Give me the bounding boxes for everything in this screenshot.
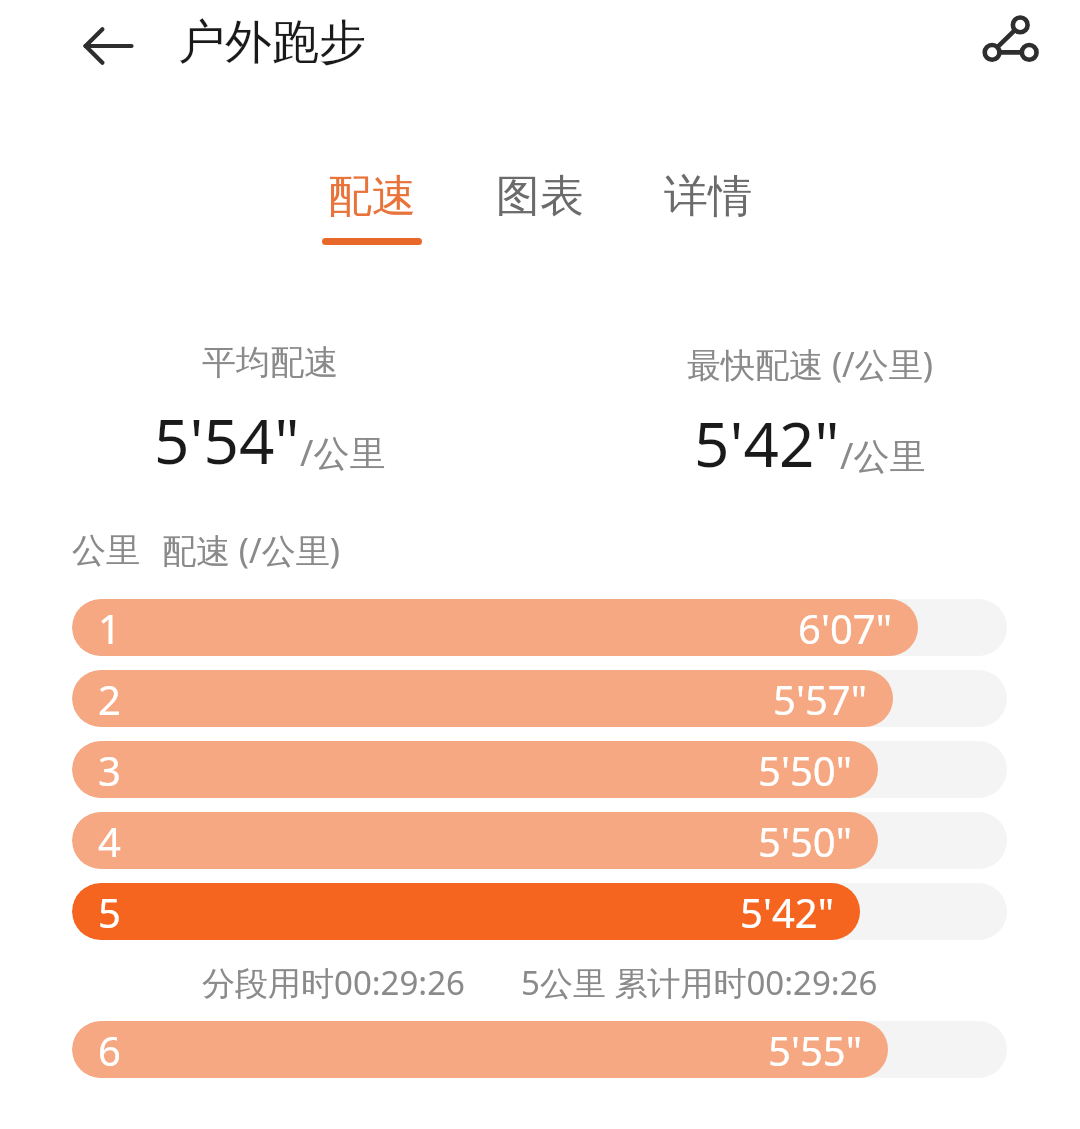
staticText: 1 <box>98 601 121 655</box>
button[interactable]: 5 <box>72 883 1007 940</box>
staticText: 2 <box>98 672 121 726</box>
staticText: 平均配速 <box>202 341 338 384</box>
staticText: 配速 (/公里) <box>162 527 340 573</box>
staticText: 6 <box>98 1023 121 1077</box>
staticText: 5'57" <box>773 672 867 726</box>
button[interactable]: 详情 <box>632 165 784 249</box>
staticText: 6'07" <box>798 601 892 655</box>
staticText: 3 <box>98 743 121 797</box>
staticText: 图表 <box>496 169 584 224</box>
button[interactable]: 4 <box>72 812 1007 869</box>
staticText: 5 <box>98 885 121 939</box>
button[interactable]: 配速 <box>296 165 448 249</box>
staticText: 最快配速 (/公里) <box>687 341 933 387</box>
button[interactable]: 图表 <box>464 165 616 249</box>
button[interactable]: 1 <box>72 599 1007 656</box>
staticText: 4 <box>98 814 121 868</box>
staticText: /公里 <box>840 431 926 480</box>
staticText: 5'54" <box>154 398 300 482</box>
staticText: /公里 <box>300 428 386 477</box>
button[interactable]: Share <box>964 0 1056 92</box>
button[interactable]: 6 <box>72 1021 1007 1078</box>
staticText: 配速 <box>328 169 416 224</box>
staticText: 5'42" <box>740 885 834 939</box>
staticText: 详情 <box>664 169 752 224</box>
staticText: 分段用时00:29:26 <box>202 960 465 1005</box>
button[interactable]: Back <box>66 4 150 88</box>
staticText: 5'50" <box>758 743 852 797</box>
staticText: 5'42" <box>694 401 840 485</box>
staticText: 5'55" <box>768 1023 862 1077</box>
staticText: 5'50" <box>758 814 852 868</box>
staticText: 公里 <box>72 529 140 572</box>
button[interactable]: 3 <box>72 741 1007 798</box>
staticText: 户外跑步 <box>178 13 366 72</box>
staticText: 5公里 累计用时00:29:26 <box>521 960 878 1005</box>
button[interactable]: 2 <box>72 670 1007 727</box>
